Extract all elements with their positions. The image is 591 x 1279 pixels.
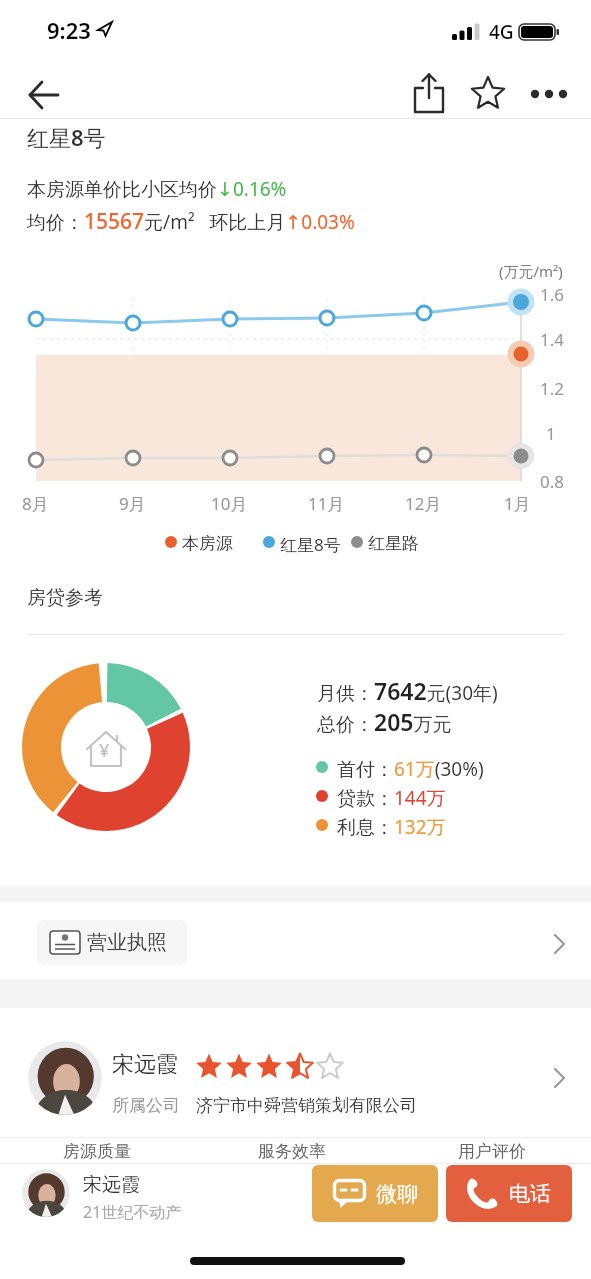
button[interactable]: 微聊: [312, 1165, 438, 1222]
staticText: 10月: [211, 492, 248, 515]
staticText: 4G: [489, 19, 514, 45]
staticText: 21世纪不动产: [83, 1201, 182, 1223]
button[interactable]: [404, 70, 454, 118]
staticText: 红星路: [368, 533, 419, 554]
staticText: 服务效率: [258, 1141, 326, 1162]
staticText: 用户评价: [458, 1141, 526, 1162]
staticText: 1月: [504, 492, 531, 515]
staticText: 房贷参考: [27, 586, 103, 610]
staticText: 电话: [509, 1181, 551, 1207]
button[interactable]: 电话: [446, 1165, 572, 1222]
staticText: 月供：7642元(30年): [317, 675, 498, 706]
staticText: 利息：132万: [337, 814, 446, 840]
staticText: 宋远霞: [112, 1051, 178, 1079]
button[interactable]: [464, 70, 512, 118]
staticText: 1: [546, 422, 556, 445]
staticText: 首付：61万(30%): [337, 756, 484, 782]
staticText: 1.2: [540, 377, 565, 400]
staticText: 济宁市中舜营销策划有限公司: [196, 1095, 417, 1116]
staticText: 微聊: [376, 1181, 418, 1207]
staticText: 贷款：144万: [337, 785, 446, 811]
button[interactable]: [524, 74, 576, 114]
staticText: 11月: [308, 492, 345, 515]
staticText: 红星8号: [280, 533, 341, 556]
staticText: 房源质量: [63, 1141, 131, 1162]
staticText: 0.8: [540, 470, 565, 493]
staticText: 8月: [22, 492, 49, 515]
button[interactable]: 宋远霞: [0, 1008, 591, 1137]
button[interactable]: [18, 74, 70, 118]
button[interactable]: 营业执照: [37, 920, 187, 965]
staticText: 9月: [119, 492, 146, 515]
staticText: 9:23: [47, 15, 91, 45]
staticText: 总价：205万元: [317, 706, 452, 737]
staticText: 营业执照: [87, 930, 167, 955]
staticText: 所属公司: [112, 1095, 180, 1116]
staticText: 宋远霞: [83, 1173, 140, 1197]
staticText: 12月: [405, 492, 442, 515]
staticText: ¥: [99, 738, 110, 763]
staticText: 1.4: [540, 328, 565, 351]
staticText: 本房源单价比小区均价↓0.16%: [27, 176, 287, 202]
staticText: 均价：15567元/m² 环比上月↑0.03%: [27, 207, 355, 236]
staticText: (万元/m²): [499, 261, 563, 281]
staticText: 红星8号: [27, 122, 106, 152]
staticText: 本房源: [182, 533, 233, 554]
staticText: 1.6: [540, 283, 565, 306]
